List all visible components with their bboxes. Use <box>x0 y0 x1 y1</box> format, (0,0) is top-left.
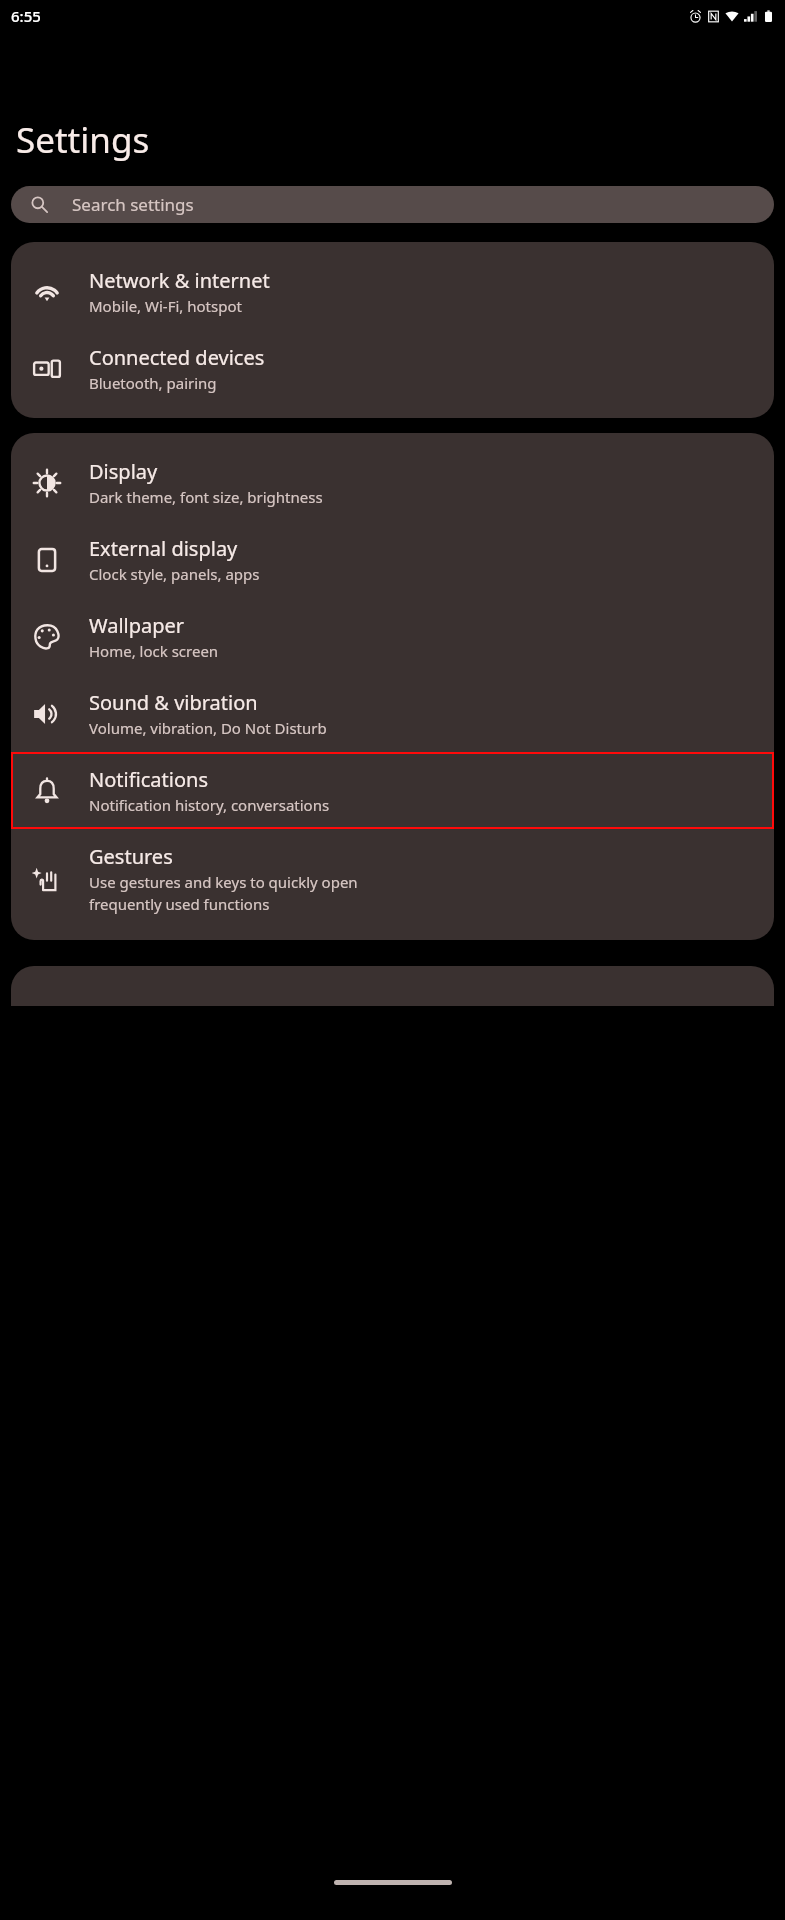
staticText: Gestures <box>89 843 173 870</box>
button[interactable]: Connected devices <box>11 330 774 407</box>
button[interactable]: Wallpaper <box>11 598 774 675</box>
staticText: Home, lock screen <box>89 641 219 661</box>
staticText: Bluetooth, pairing <box>89 373 217 393</box>
staticText: Settings <box>16 116 150 164</box>
button[interactable]: Network & internet <box>11 253 774 330</box>
staticText: Notifications <box>89 766 208 793</box>
staticText: Use gestures and keys to quickly open fr… <box>89 872 358 915</box>
staticText: Display <box>89 458 158 485</box>
staticText: Notification history, conversations <box>89 795 330 815</box>
button[interactable]: Gestures <box>11 829 774 929</box>
button[interactable]: Notifications <box>11 752 774 829</box>
button[interactable]: Sound & vibration <box>11 675 774 752</box>
staticText: Mobile, Wi-Fi, hotspot <box>89 296 242 316</box>
staticText: Clock style, panels, apps <box>89 564 260 584</box>
staticText: Search settings <box>72 193 194 216</box>
button[interactable]: External display <box>11 521 774 598</box>
staticText: Sound & vibration <box>89 689 258 716</box>
staticText: Connected devices <box>89 344 265 371</box>
staticText: Dark theme, font size, brightness <box>89 487 323 507</box>
staticText: Network & internet <box>89 267 270 294</box>
button[interactable]: Display <box>11 444 774 521</box>
staticText: 6:55 <box>11 6 41 26</box>
staticText: Volume, vibration, Do Not Disturb <box>89 718 327 738</box>
button[interactable]: Search settings <box>11 186 774 223</box>
staticText: Wallpaper <box>89 612 185 639</box>
staticText: External display <box>89 535 238 562</box>
